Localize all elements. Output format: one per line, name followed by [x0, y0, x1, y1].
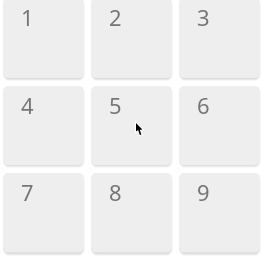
staticText: 1 — [21, 2, 34, 32]
button[interactable]: 3 — [179, 0, 260, 78]
button[interactable]: 6 — [179, 86, 260, 165]
staticText: 6 — [197, 90, 210, 120]
button[interactable]: 2 — [91, 0, 172, 78]
staticText: 8 — [109, 177, 122, 207]
staticText: 2 — [109, 2, 122, 32]
staticText: 3 — [197, 2, 210, 32]
button[interactable]: 7 — [3, 173, 84, 252]
button[interactable]: 1 — [3, 0, 84, 78]
staticText: 5 — [109, 90, 122, 120]
staticText: 4 — [21, 90, 34, 120]
staticText: 7 — [21, 177, 34, 207]
button[interactable]: 9 — [179, 173, 260, 252]
other: Pointer — [136, 123, 150, 142]
button[interactable]: 4 — [3, 86, 84, 165]
button[interactable]: 8 — [91, 173, 172, 252]
staticText: 9 — [197, 177, 210, 207]
button[interactable]: 5 — [91, 86, 172, 165]
